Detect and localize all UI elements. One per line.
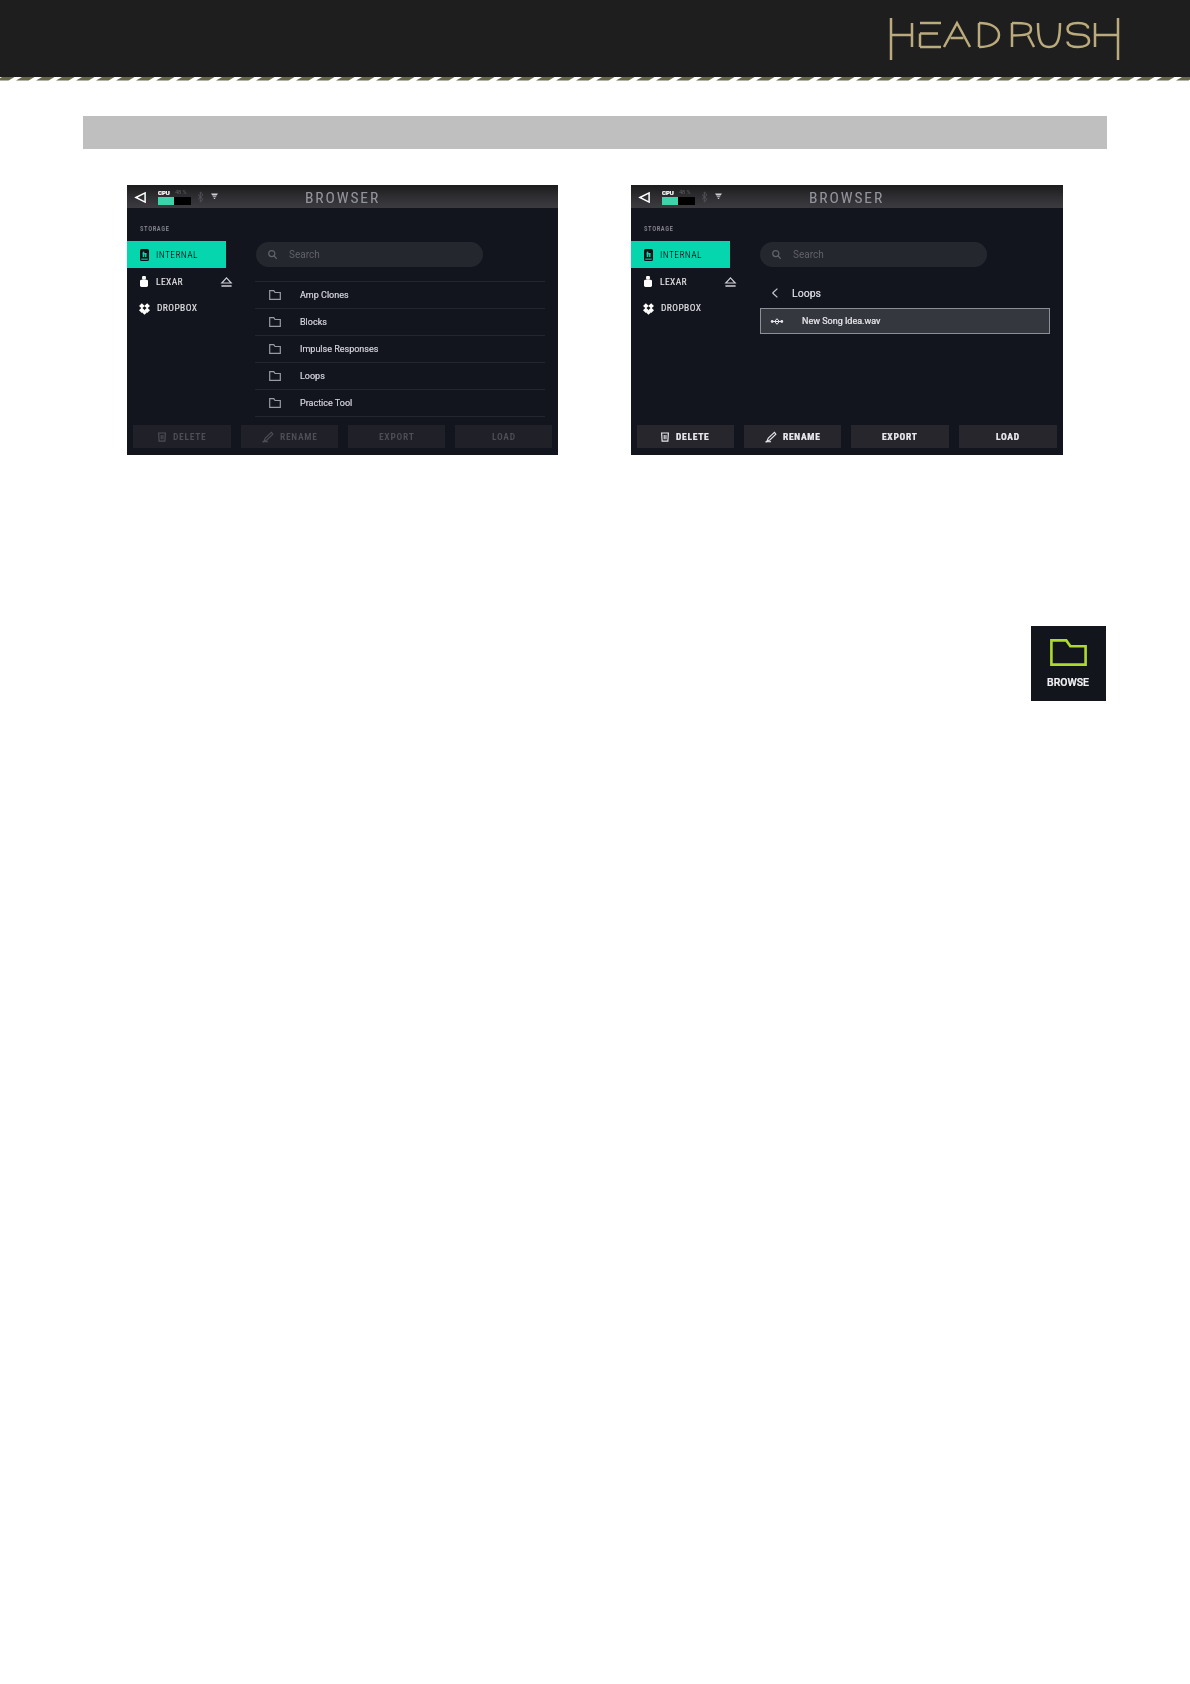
staticText: INTERNAL xyxy=(156,249,199,260)
staticText: Loops xyxy=(300,371,325,382)
staticText: Search xyxy=(289,249,320,261)
button[interactable]: EXPORT xyxy=(851,425,949,448)
staticText: 48 % xyxy=(175,189,187,195)
staticText: STORAGE xyxy=(644,225,674,233)
staticText: Amp Clones xyxy=(300,290,349,301)
button[interactable]: Back xyxy=(132,189,149,205)
staticText: EXPORT xyxy=(379,431,415,442)
button[interactable]: Loops xyxy=(759,283,821,303)
staticText: BROWSER xyxy=(305,189,381,207)
button[interactable]: New Song Idea.wav xyxy=(760,308,1050,334)
staticText: 48 % xyxy=(679,189,691,195)
staticText: DROPBOX xyxy=(157,302,198,313)
button[interactable]: LEXAR xyxy=(127,269,237,294)
button[interactable]: INTERNAL xyxy=(631,241,730,268)
button[interactable]: DELETE xyxy=(637,425,734,448)
staticText: Practice Tool xyxy=(300,398,353,409)
button[interactable]: RENAME xyxy=(241,425,338,448)
staticText: Loops xyxy=(792,287,821,299)
button[interactable]: Eject xyxy=(721,273,739,291)
staticText: Search xyxy=(793,249,824,261)
button[interactable]: Loops xyxy=(255,363,545,389)
staticText: LEXAR xyxy=(660,276,687,287)
button[interactable]: Amp Clones xyxy=(255,282,545,308)
staticText: LOAD xyxy=(996,431,1020,442)
button[interactable]: LOAD xyxy=(455,425,552,448)
button[interactable]: Search xyxy=(256,242,483,267)
button[interactable]: Blocks xyxy=(255,309,545,335)
staticText: DELETE xyxy=(173,431,207,442)
staticText: Impulse Responses xyxy=(300,344,379,355)
button[interactable]: RENAME xyxy=(744,425,841,448)
button[interactable]: Impulse Responses xyxy=(255,336,545,362)
staticText: DROPBOX xyxy=(661,302,702,313)
staticText: DELETE xyxy=(676,431,710,442)
staticText: BROWSE xyxy=(1047,676,1090,688)
button[interactable]: Browse xyxy=(1031,626,1106,701)
staticText: INTERNAL xyxy=(660,249,703,260)
staticText: BROWSER xyxy=(809,189,885,207)
button[interactable]: LEXAR xyxy=(631,269,741,294)
button[interactable]: Eject xyxy=(217,273,235,291)
button[interactable]: Search xyxy=(760,242,987,267)
button[interactable]: Practice Tool xyxy=(255,390,545,416)
staticText: CPU xyxy=(662,189,674,196)
staticText: Blocks xyxy=(300,317,327,328)
staticText: LEXAR xyxy=(156,276,183,287)
button[interactable]: DROPBOX xyxy=(631,295,730,320)
staticText: EXPORT xyxy=(882,431,918,442)
staticText: LOAD xyxy=(492,431,516,442)
button[interactable]: Back xyxy=(636,189,653,205)
staticText: RENAME xyxy=(280,431,318,442)
staticText: CPU xyxy=(158,189,170,196)
button[interactable]: EXPORT xyxy=(348,425,445,448)
staticText: New Song Idea.wav xyxy=(802,316,881,327)
button[interactable]: LOAD xyxy=(959,425,1057,448)
staticText: STORAGE xyxy=(140,225,170,233)
staticText: RENAME xyxy=(783,431,821,442)
button[interactable]: DELETE xyxy=(133,425,231,448)
button[interactable]: INTERNAL xyxy=(127,241,226,268)
button[interactable]: DROPBOX xyxy=(127,295,226,320)
